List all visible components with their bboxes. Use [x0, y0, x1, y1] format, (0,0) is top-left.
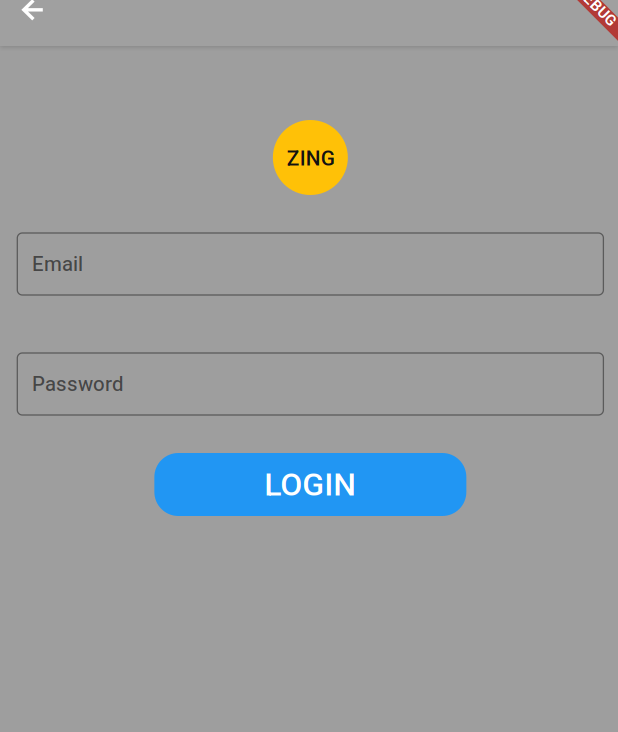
- staticText: Email: [32, 252, 83, 276]
- staticText: LOGIN: [264, 466, 356, 503]
- staticText: DEBUG: [572, 0, 618, 15]
- button[interactable]: LOGIN: [154, 453, 466, 516]
- staticText: ZING: [287, 146, 335, 171]
- button[interactable]: Back: [9, 0, 57, 32]
- button[interactable]: Email: [17, 233, 603, 295]
- staticText: Password: [32, 372, 123, 396]
- button[interactable]: Password: [17, 353, 603, 415]
